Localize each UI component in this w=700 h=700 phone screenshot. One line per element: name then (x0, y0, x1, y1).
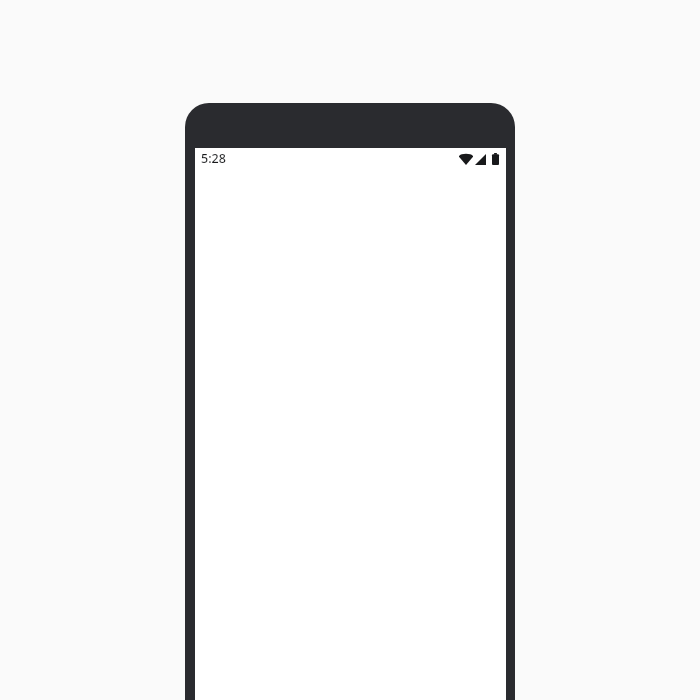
other: Battery (492, 153, 499, 165)
staticText: 5:28 (201, 150, 226, 167)
other: Mobile signal (475, 154, 486, 165)
other: Wi-Fi signal (459, 154, 473, 165)
